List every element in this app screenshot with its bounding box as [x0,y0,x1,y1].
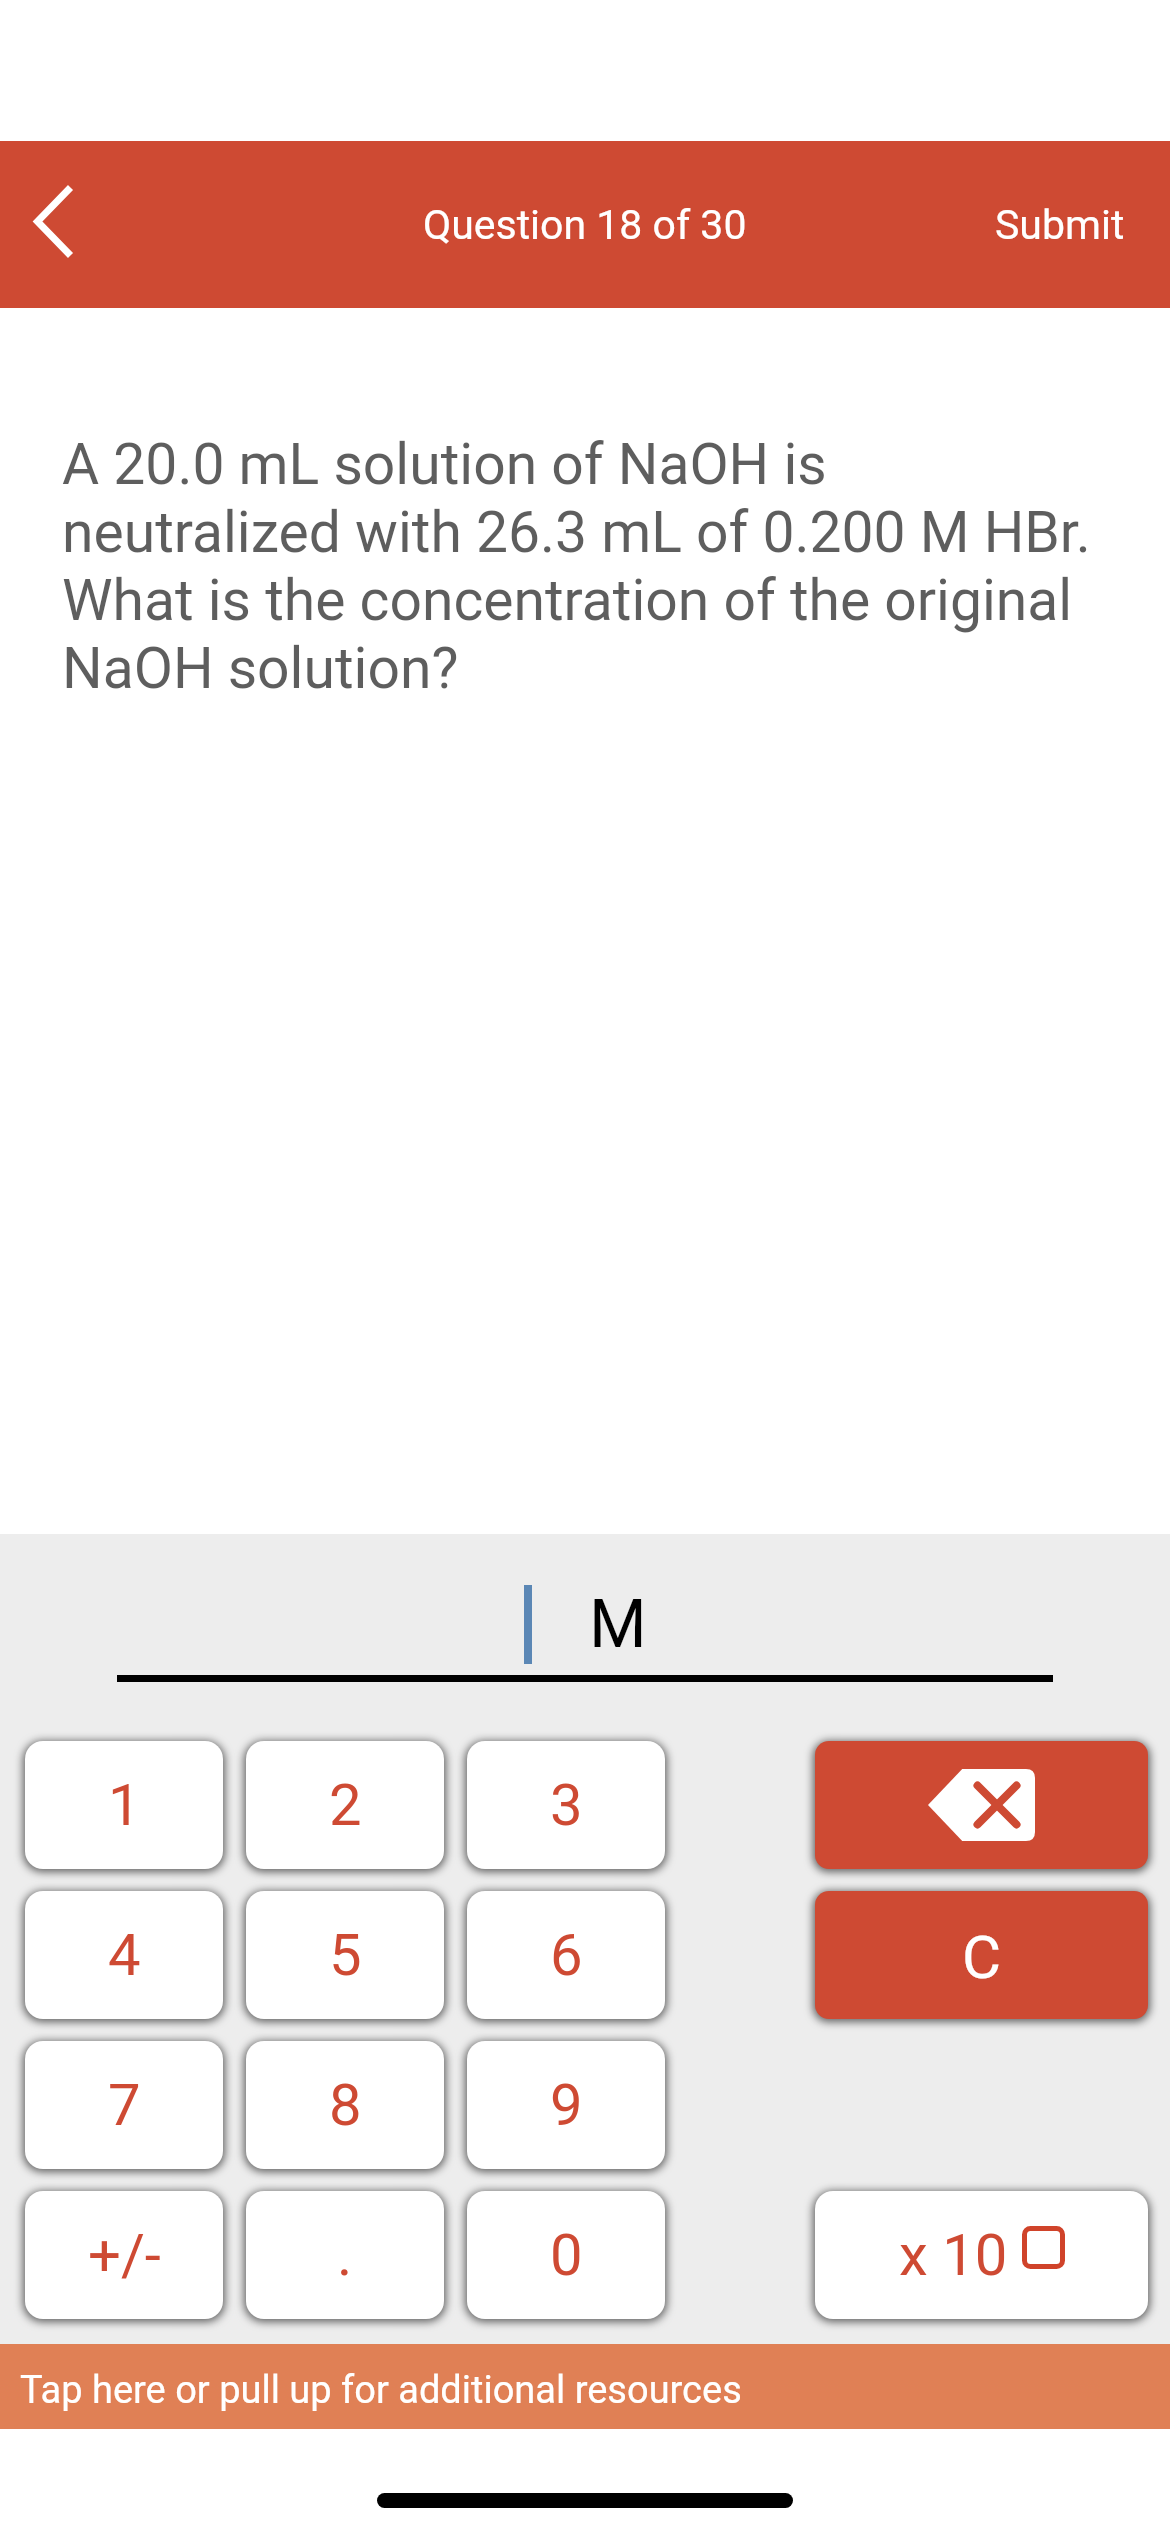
button[interactable]: 1 [25,1741,223,1869]
button[interactable]: 8 [246,2041,444,2169]
button[interactable]: . [246,2191,444,2319]
button[interactable]: Tap here or pull up for additional resou… [0,2344,1170,2429]
button[interactable]: x 10 [815,2191,1148,2319]
button[interactable]: 9 [467,2041,665,2169]
button[interactable]: Submit [955,141,1170,308]
staticText: 2 [329,1771,362,1839]
staticText: C [962,1922,1002,1992]
staticText: 7 [108,2071,141,2139]
staticText: Tap here or pull up for additional resou… [20,2368,742,2413]
button[interactable]: 2 [246,1741,444,1869]
button[interactable]: 7 [25,2041,223,2169]
staticText: 5 [329,1921,362,1989]
staticText: 6 [550,1921,583,1989]
staticText: 9 [550,2071,583,2139]
button[interactable]: 0 [467,2191,665,2319]
button[interactable]: 3 [467,1741,665,1869]
staticText: 4 [108,1921,141,1989]
button[interactable]: Backspace [815,1741,1148,1869]
staticText: 1 [108,1771,141,1839]
button[interactable]: 5 [246,1891,444,2019]
button[interactable]: 6 [467,1891,665,2019]
staticText: 0 [550,2221,583,2289]
button[interactable]: Back [0,141,103,308]
staticText: . [337,2221,353,2289]
button[interactable]: 4 [25,1891,223,2019]
button[interactable]: +/- [25,2191,223,2319]
staticText: +/- [88,2221,161,2289]
staticText: A 20.0 mL solution of NaOH is neutralize… [62,431,1102,702]
button[interactable]: C [815,1891,1148,2019]
staticText: M [589,1586,647,1663]
staticText: 8 [329,2071,362,2139]
staticText: Submit [995,201,1125,249]
staticText: 3 [550,1771,583,1839]
staticText: Question 18 of 30 [423,201,747,249]
staticText: x 10 [899,2221,1008,2289]
